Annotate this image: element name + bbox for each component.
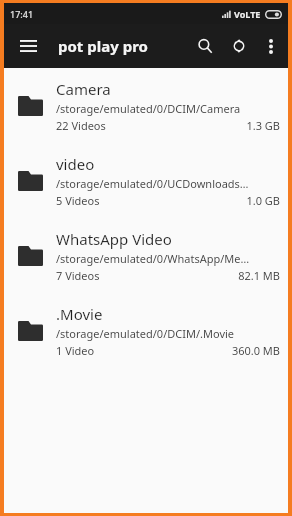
staticText: 7 Videos (56, 268, 100, 283)
staticText: /storage/emulated/0/UCDownloads… (56, 176, 249, 191)
staticText: Camera (56, 79, 111, 99)
staticText: 1.0 GB (246, 193, 280, 208)
staticText: 17:41 (10, 8, 34, 20)
button[interactable]: Search (188, 29, 222, 63)
staticText: /storage/emulated/0/DCIM/.Movie (56, 326, 235, 341)
button[interactable]: video (4, 143, 288, 218)
staticText: WhatsApp Video (56, 229, 172, 249)
staticText: 360.0 MB (231, 343, 280, 358)
staticText: .Movie (56, 304, 103, 324)
button[interactable]: WhatsApp Video (4, 218, 288, 293)
staticText: /storage/emulated/0/DCIM/Camera (56, 101, 241, 116)
staticText: 82.1 MB (238, 268, 280, 283)
staticText: 22 Videos (56, 118, 106, 133)
button[interactable]: Camera (4, 68, 288, 143)
button[interactable]: More options (256, 31, 286, 61)
staticText: VoLTE (234, 8, 261, 20)
staticText: 5 Videos (56, 193, 100, 208)
staticText: 1 Video (56, 343, 95, 358)
staticText: 1.3 GB (246, 118, 280, 133)
button[interactable]: .Movie (4, 293, 288, 368)
staticText: /storage/emulated/0/WhatsApp/Me… (56, 251, 250, 266)
staticText: video (56, 154, 95, 174)
button[interactable]: Refresh (222, 29, 256, 63)
button[interactable]: Open navigation menu (10, 28, 46, 64)
staticText: pot play pro (58, 36, 148, 56)
